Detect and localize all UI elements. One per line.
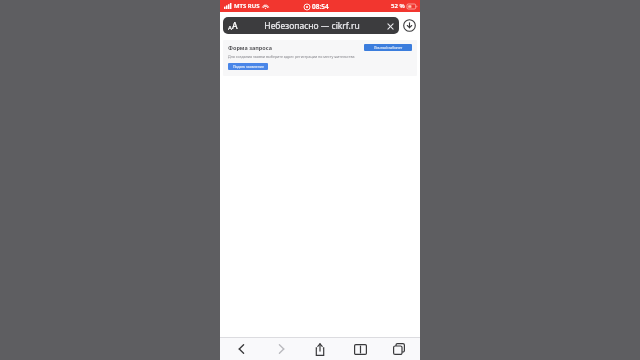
button[interactable]: Share — [307, 339, 333, 359]
staticText: 52 % — [391, 2, 405, 10]
staticText: Форма запроса — [228, 44, 272, 51]
button[interactable]: Подать заявление — [228, 63, 268, 70]
button[interactable]: Downloads — [402, 18, 417, 33]
button[interactable]: Back — [228, 339, 254, 359]
staticText: MTS RUS — [234, 2, 260, 10]
button[interactable]: A — [223, 17, 399, 34]
staticText: 08:54 — [312, 2, 329, 11]
staticText: Для создания заявки выберите адрес регис… — [228, 54, 355, 59]
button[interactable]: Stop loading — [385, 21, 395, 31]
staticText: Небезопасно — cikrf.ru — [239, 20, 385, 32]
staticText: A — [232, 20, 238, 32]
button[interactable]: Forward — [268, 339, 294, 359]
button[interactable]: Tabs — [386, 339, 412, 359]
button[interactable]: Bookmarks — [347, 339, 373, 359]
staticText: Личный кабинет — [374, 45, 403, 50]
staticText: A — [228, 24, 232, 32]
staticText: Подать заявление — [233, 64, 264, 69]
button[interactable]: A — [227, 19, 239, 33]
button[interactable]: Личный кабинет — [364, 44, 412, 51]
